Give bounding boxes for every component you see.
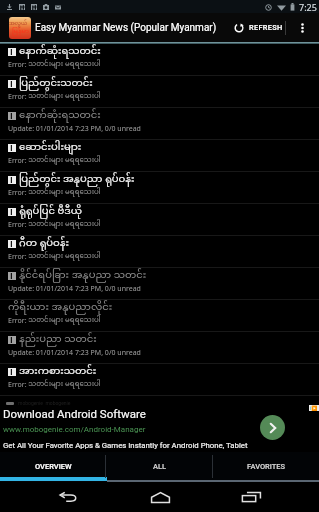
staticText: i▶ <box>310 405 318 411</box>
staticText: နောက်ဆုံးရသတင်း <box>19 109 101 123</box>
staticText: Update: 01/01/2014 7:23 PM, 0/0 unread <box>8 284 141 294</box>
staticText: ပြည်တွင်းသတင်း <box>19 77 93 91</box>
button[interactable]: FAVORITES <box>213 452 319 482</box>
staticText: mobogenie mobogenie <box>18 400 71 406</box>
button[interactable]: Home <box>136 482 184 512</box>
button[interactable]: OVERVIEW <box>0 452 107 482</box>
staticText: Update: 01/01/2014 7:23 PM, 0/0 unread <box>8 348 141 358</box>
button[interactable]: ကိုရီးယား အနုပညာလိုင်း <box>0 300 319 332</box>
button[interactable]: ပြည်တွင်း အနုပညာ ရုပ်ဝန်း <box>0 172 319 204</box>
staticText: နိုင်ငံရပ်ခြား အနုပညာ သတင်း <box>19 269 147 283</box>
button[interactable]: နိုင်ငံရပ်ခြား အနုပညာ သတင်း <box>0 268 319 300</box>
button[interactable]: Back <box>44 482 92 512</box>
staticText: Error: သတင်းများ မရရသေးပါ <box>8 156 101 166</box>
button[interactable]: နည်းပညာ သတင်း <box>0 332 319 364</box>
staticText: OVERVIEW <box>35 462 72 471</box>
button[interactable]: Ad choices <box>309 405 319 411</box>
button[interactable]: REFRESH <box>228 13 285 42</box>
button[interactable]: နောက်ဆုံးရသတင်း <box>0 108 319 140</box>
button[interactable]: ဂီတ ရုပ်ဝန်း <box>0 236 319 268</box>
staticText: Get All Your Favorite Apps & Games Insta… <box>3 441 248 450</box>
staticText: Download Android Software <box>3 407 146 420</box>
button[interactable]: အားကစားသတင်း <box>0 364 319 396</box>
staticText: www.mobogenie.com/Android-Manager <box>3 425 146 434</box>
staticText: Error: သတင်းများ မရရသေးပါ <box>8 316 101 326</box>
staticText: Error: သတင်းများ မရရသေးပါ <box>8 60 101 70</box>
staticText: ဂီတ ရုပ်ဝန်း <box>19 237 69 251</box>
button[interactable]: ပြည်တွင်းသတင်း <box>0 76 319 108</box>
staticText: ရုံရုပ်ပြင် ဗီဒီယို <box>19 205 82 219</box>
staticText: အလွယ်တကူ <box>9 20 31 27</box>
staticText: ကိုရီးယား အနုပညာလိုင်း <box>8 301 113 315</box>
button[interactable]: ဆောင်းပါးများ <box>0 140 319 172</box>
staticText: Error: သတင်းများ မရရသေးပါ <box>8 380 101 390</box>
staticText: Error: သတင်းများ မရရသေးပါ <box>8 92 101 102</box>
button[interactable]: Recent apps <box>227 482 275 512</box>
button[interactable]: Open advertisement <box>260 415 285 440</box>
staticText: Update: 01/01/2014 7:23 PM, 0/0 unread <box>8 124 141 134</box>
staticText: 7:25 <box>299 1 317 13</box>
staticText: ပြည်တွင်း အနုပညာ ရုပ်ဝန်း <box>19 173 135 187</box>
staticText: နောက်ဆုံးရသတင်း <box>19 45 101 59</box>
staticText: REFRESH <box>249 23 283 32</box>
staticText: Error: သတင်းများ မရရသေးပါ <box>8 252 101 262</box>
staticText: FAVORITES <box>247 462 286 471</box>
staticText: နည်းပညာ သတင်း <box>19 333 97 347</box>
button[interactable]: ရုံရုပ်ပြင် ဗီဒီယို <box>0 204 319 236</box>
staticText: အားကစားသတင်း <box>19 365 97 379</box>
staticText: Error: သတင်းများ မရရသေးပါ <box>8 220 101 230</box>
staticText: Error: သတင်းများ မရရသေးပါ <box>8 188 101 198</box>
button[interactable]: နောက်ဆုံးရသတင်း <box>0 44 319 76</box>
button[interactable]: More options <box>286 13 319 42</box>
staticText: မြန်မာ <box>12 27 29 36</box>
staticText: Easy Myanmar News (Popular Myanmar) <box>35 22 228 34</box>
button[interactable]: ALL <box>107 452 213 482</box>
staticText: ဆောင်းပါးများ <box>19 141 82 155</box>
staticText: ALL <box>153 462 167 471</box>
